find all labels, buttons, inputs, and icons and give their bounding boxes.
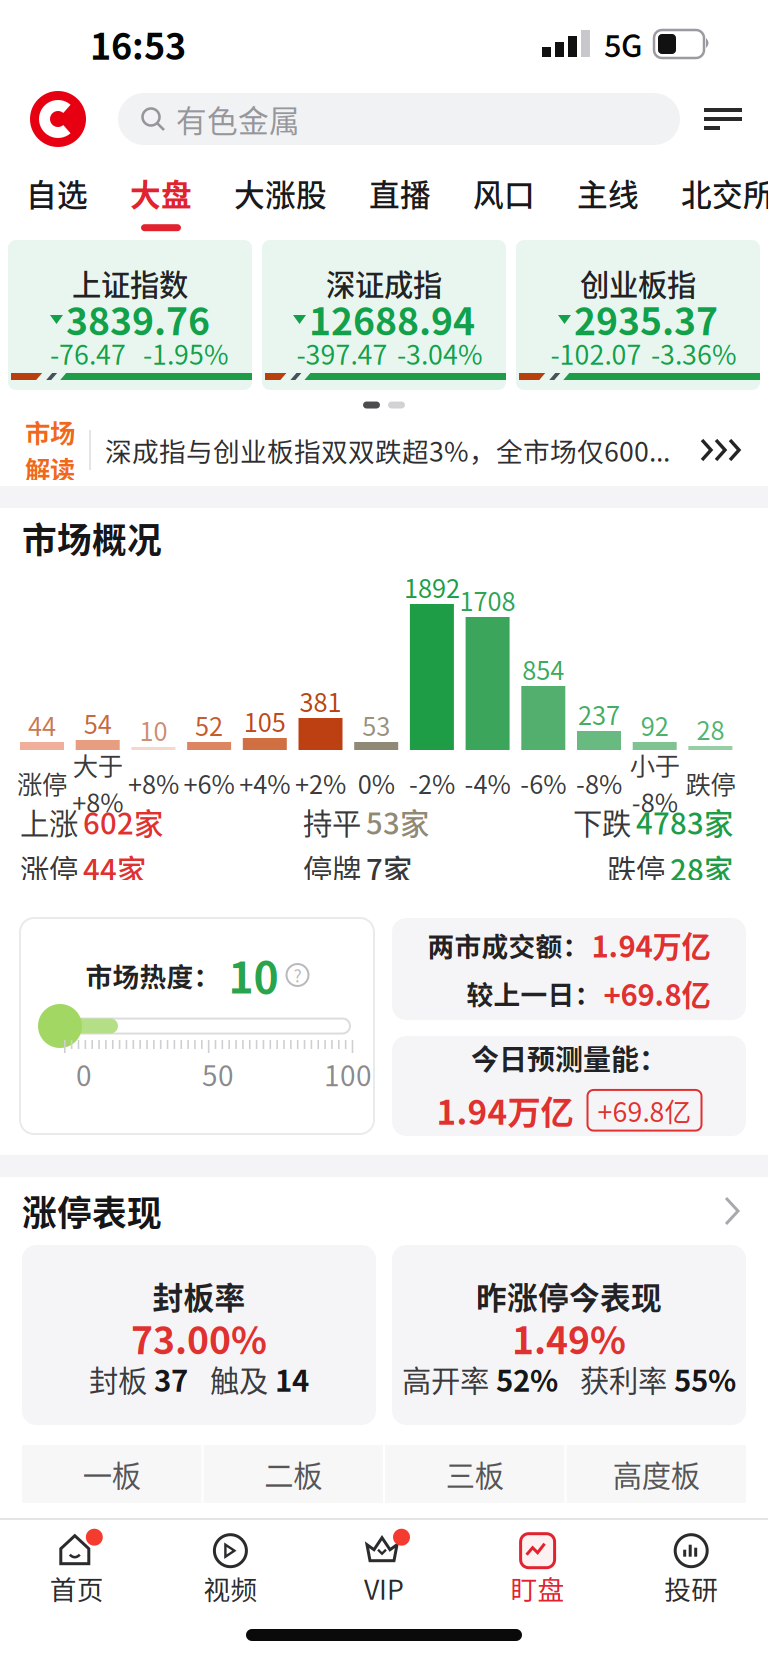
staticText: 53家 [366,800,429,843]
button[interactable]: 风口 [473,171,535,215]
staticText: 73.00% [131,1311,267,1365]
staticText: 55% [674,1358,736,1400]
button[interactable]: 大涨股 [234,171,327,215]
staticText: 北交所 [681,171,768,215]
staticText: 0 [76,1054,92,1094]
staticText: 获利率 [580,1358,667,1400]
staticText: 3839.76 [66,292,210,346]
staticText: -8% [632,783,678,820]
staticText: 涨停 [17,765,67,801]
staticText: 触及 [210,1358,268,1400]
staticText: +6% [184,765,235,801]
staticText: 大于 [73,746,123,783]
staticText: 深成指与创业板指双双跌超3%，全市场仅600... [105,431,670,469]
button[interactable]: 直播 [369,171,431,215]
staticText: 1892 [404,569,460,605]
staticText: 首页 [50,1569,104,1607]
staticText: 昨涨停今表现 [476,1274,662,1318]
staticText: 投研 [664,1569,718,1607]
button[interactable]: 深证成指 [262,240,506,390]
button[interactable]: 涨停表现 [0,1177,768,1245]
staticText: 小于 [630,746,680,783]
staticText: 14 [275,1358,309,1400]
button[interactable] [30,91,86,147]
button[interactable]: 三板 [385,1445,564,1503]
staticText: 创业板指 [580,262,696,304]
staticText: -1.95% [143,334,229,372]
staticText: 105 [244,703,286,739]
staticText: 100 [324,1054,372,1094]
button[interactable]: 上证指数 [8,240,252,390]
staticText: -3.36% [651,334,737,372]
button[interactable]: 高度板 [566,1445,746,1503]
staticText: 37 [154,1358,188,1400]
staticText: 大涨股 [234,171,327,215]
button[interactable]: 有色金属 [118,93,680,145]
button[interactable] [704,108,742,130]
staticText: 0% [358,765,395,801]
button[interactable]: 首页 [0,1527,154,1613]
staticText: -4% [465,765,511,801]
staticText: +2% [295,765,346,801]
button[interactable]: 昨涨停今表现 [392,1245,746,1425]
staticText: 自选 [26,171,88,215]
button[interactable]: 创业板指 [516,240,760,390]
staticText: 今日预测量能： [471,1038,667,1078]
staticText: 下跌 [573,800,631,843]
button[interactable]: 封板率 [22,1245,376,1425]
staticText: 10 [139,712,167,748]
button[interactable]: 市场 [0,420,768,480]
button[interactable]: 一板 [22,1445,201,1503]
button[interactable]: 二板 [203,1445,383,1503]
staticText: 52 [195,707,223,743]
staticText: 跌停 [607,847,665,889]
staticText: 1708 [460,582,516,618]
staticText: 大盘 [130,171,192,215]
staticText: 381 [299,683,341,719]
staticText: VIP [364,1569,404,1607]
staticText: 有色金属 [176,97,300,141]
button[interactable]: 视频 [154,1527,307,1613]
staticText: 50 [202,1054,234,1094]
staticText: 市场 [25,413,75,450]
staticText: 持平 [303,800,361,843]
staticText: +4% [239,765,290,801]
staticText: 上证指数 [72,262,188,304]
button[interactable]: VIP [307,1527,461,1613]
staticText: 上涨 [20,800,78,843]
staticText: 28 [696,711,724,747]
staticText: 16:53 [90,18,186,70]
staticText: 92 [641,707,669,743]
staticText: 市场概况 [22,513,162,563]
staticText: 涨停表现 [22,1186,162,1236]
staticText: 涨停 [20,847,78,889]
button[interactable]: 投研 [614,1527,768,1613]
staticText: 5G [604,22,642,66]
button[interactable]: 自选 [26,171,88,215]
staticText: 两市成交额： [427,925,589,964]
staticText: 10 [228,944,278,1006]
staticText: 602家 [83,800,163,843]
button[interactable]: 北交所 [681,171,768,215]
staticText: 市场热度： [85,956,220,994]
staticText: -102.07 [550,334,641,372]
button[interactable]: 盯盘 [461,1527,614,1613]
staticText: 盯盘 [511,1569,565,1607]
staticText: 较上一日： [466,974,601,1012]
staticText: 跌停 [685,765,735,801]
staticText: 风口 [473,171,535,215]
staticText: 深证成指 [326,262,442,304]
button[interactable]: 大盘 [130,171,192,231]
staticText: 7家 [366,847,412,889]
button[interactable]: 市场热度： [20,918,374,1134]
staticText: 停牌 [303,847,361,889]
staticText: 237 [578,696,620,732]
staticText: 28家 [670,847,733,889]
staticText: 53 [362,707,390,743]
staticText: 高度板 [613,1453,700,1495]
staticText: 1.49% [512,1311,626,1365]
staticText: +8% [72,783,123,820]
staticText: 主线 [577,171,639,215]
staticText: 视频 [203,1569,257,1607]
button[interactable]: 主线 [577,171,639,215]
